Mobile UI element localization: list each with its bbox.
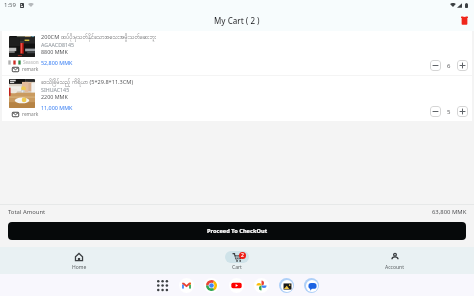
staticText: ဒေသိခြိမ်သည့် ကိရိယာ (5*29.8*11.3CM)	[41, 78, 134, 87]
button[interactable]: remark	[2, 76, 472, 121]
button[interactable]: Decrease quantity	[430, 106, 441, 117]
staticText: 2	[241, 252, 244, 259]
staticText: Proceed To CheckOut	[207, 227, 268, 235]
button[interactable]: Chrome	[204, 278, 219, 293]
button[interactable]: Gmail	[179, 278, 194, 293]
staticText: remark	[22, 111, 39, 118]
button[interactable]: Account	[316, 247, 474, 274]
staticText: Total Amount	[8, 208, 46, 216]
staticText: Cart	[232, 264, 242, 271]
button[interactable]: Messages	[304, 278, 319, 293]
staticText: 52,800 MMK	[41, 59, 73, 66]
button[interactable]: Decrease quantity	[430, 60, 441, 71]
button[interactable]: Files	[279, 278, 294, 293]
button[interactable]: Proceed To CheckOut	[8, 222, 466, 240]
staticText: AGAACD8145	[41, 41, 75, 48]
staticText: Account	[385, 264, 405, 271]
staticText: Home	[72, 264, 87, 271]
button[interactable]: Season	[2, 31, 472, 75]
staticText: 1:59	[4, 1, 16, 9]
staticText: 200CM ထပ်ပိုးမှသတ်နိုင်သောအသေးအမှိုးသတ်ဆ…	[41, 33, 157, 42]
button[interactable]: Photos	[254, 278, 269, 293]
staticText: My Cart ( 2 )	[214, 15, 260, 26]
staticText: SIHUAC145	[41, 86, 70, 93]
staticText: 5	[447, 108, 451, 116]
staticText: 6	[447, 62, 451, 70]
staticText: 11,000 MMK	[41, 104, 73, 111]
button[interactable]: Increase quantity	[457, 60, 468, 71]
button[interactable]: 2	[158, 247, 316, 274]
button[interactable]: Delete all items	[458, 14, 471, 27]
staticText: Season	[23, 59, 39, 65]
button[interactable]: Increase quantity	[457, 106, 468, 117]
staticText: remark	[22, 66, 39, 73]
staticText: 2200 MMK	[41, 93, 68, 100]
button[interactable]: remark	[12, 111, 39, 118]
button[interactable]: remark	[12, 66, 39, 73]
button[interactable]: YouTube	[229, 278, 244, 293]
staticText: 63,800 MMK	[432, 208, 467, 216]
staticText: 8800 MMK	[41, 48, 68, 55]
button[interactable]: Home	[0, 247, 158, 274]
button[interactable]: All apps	[155, 278, 169, 292]
